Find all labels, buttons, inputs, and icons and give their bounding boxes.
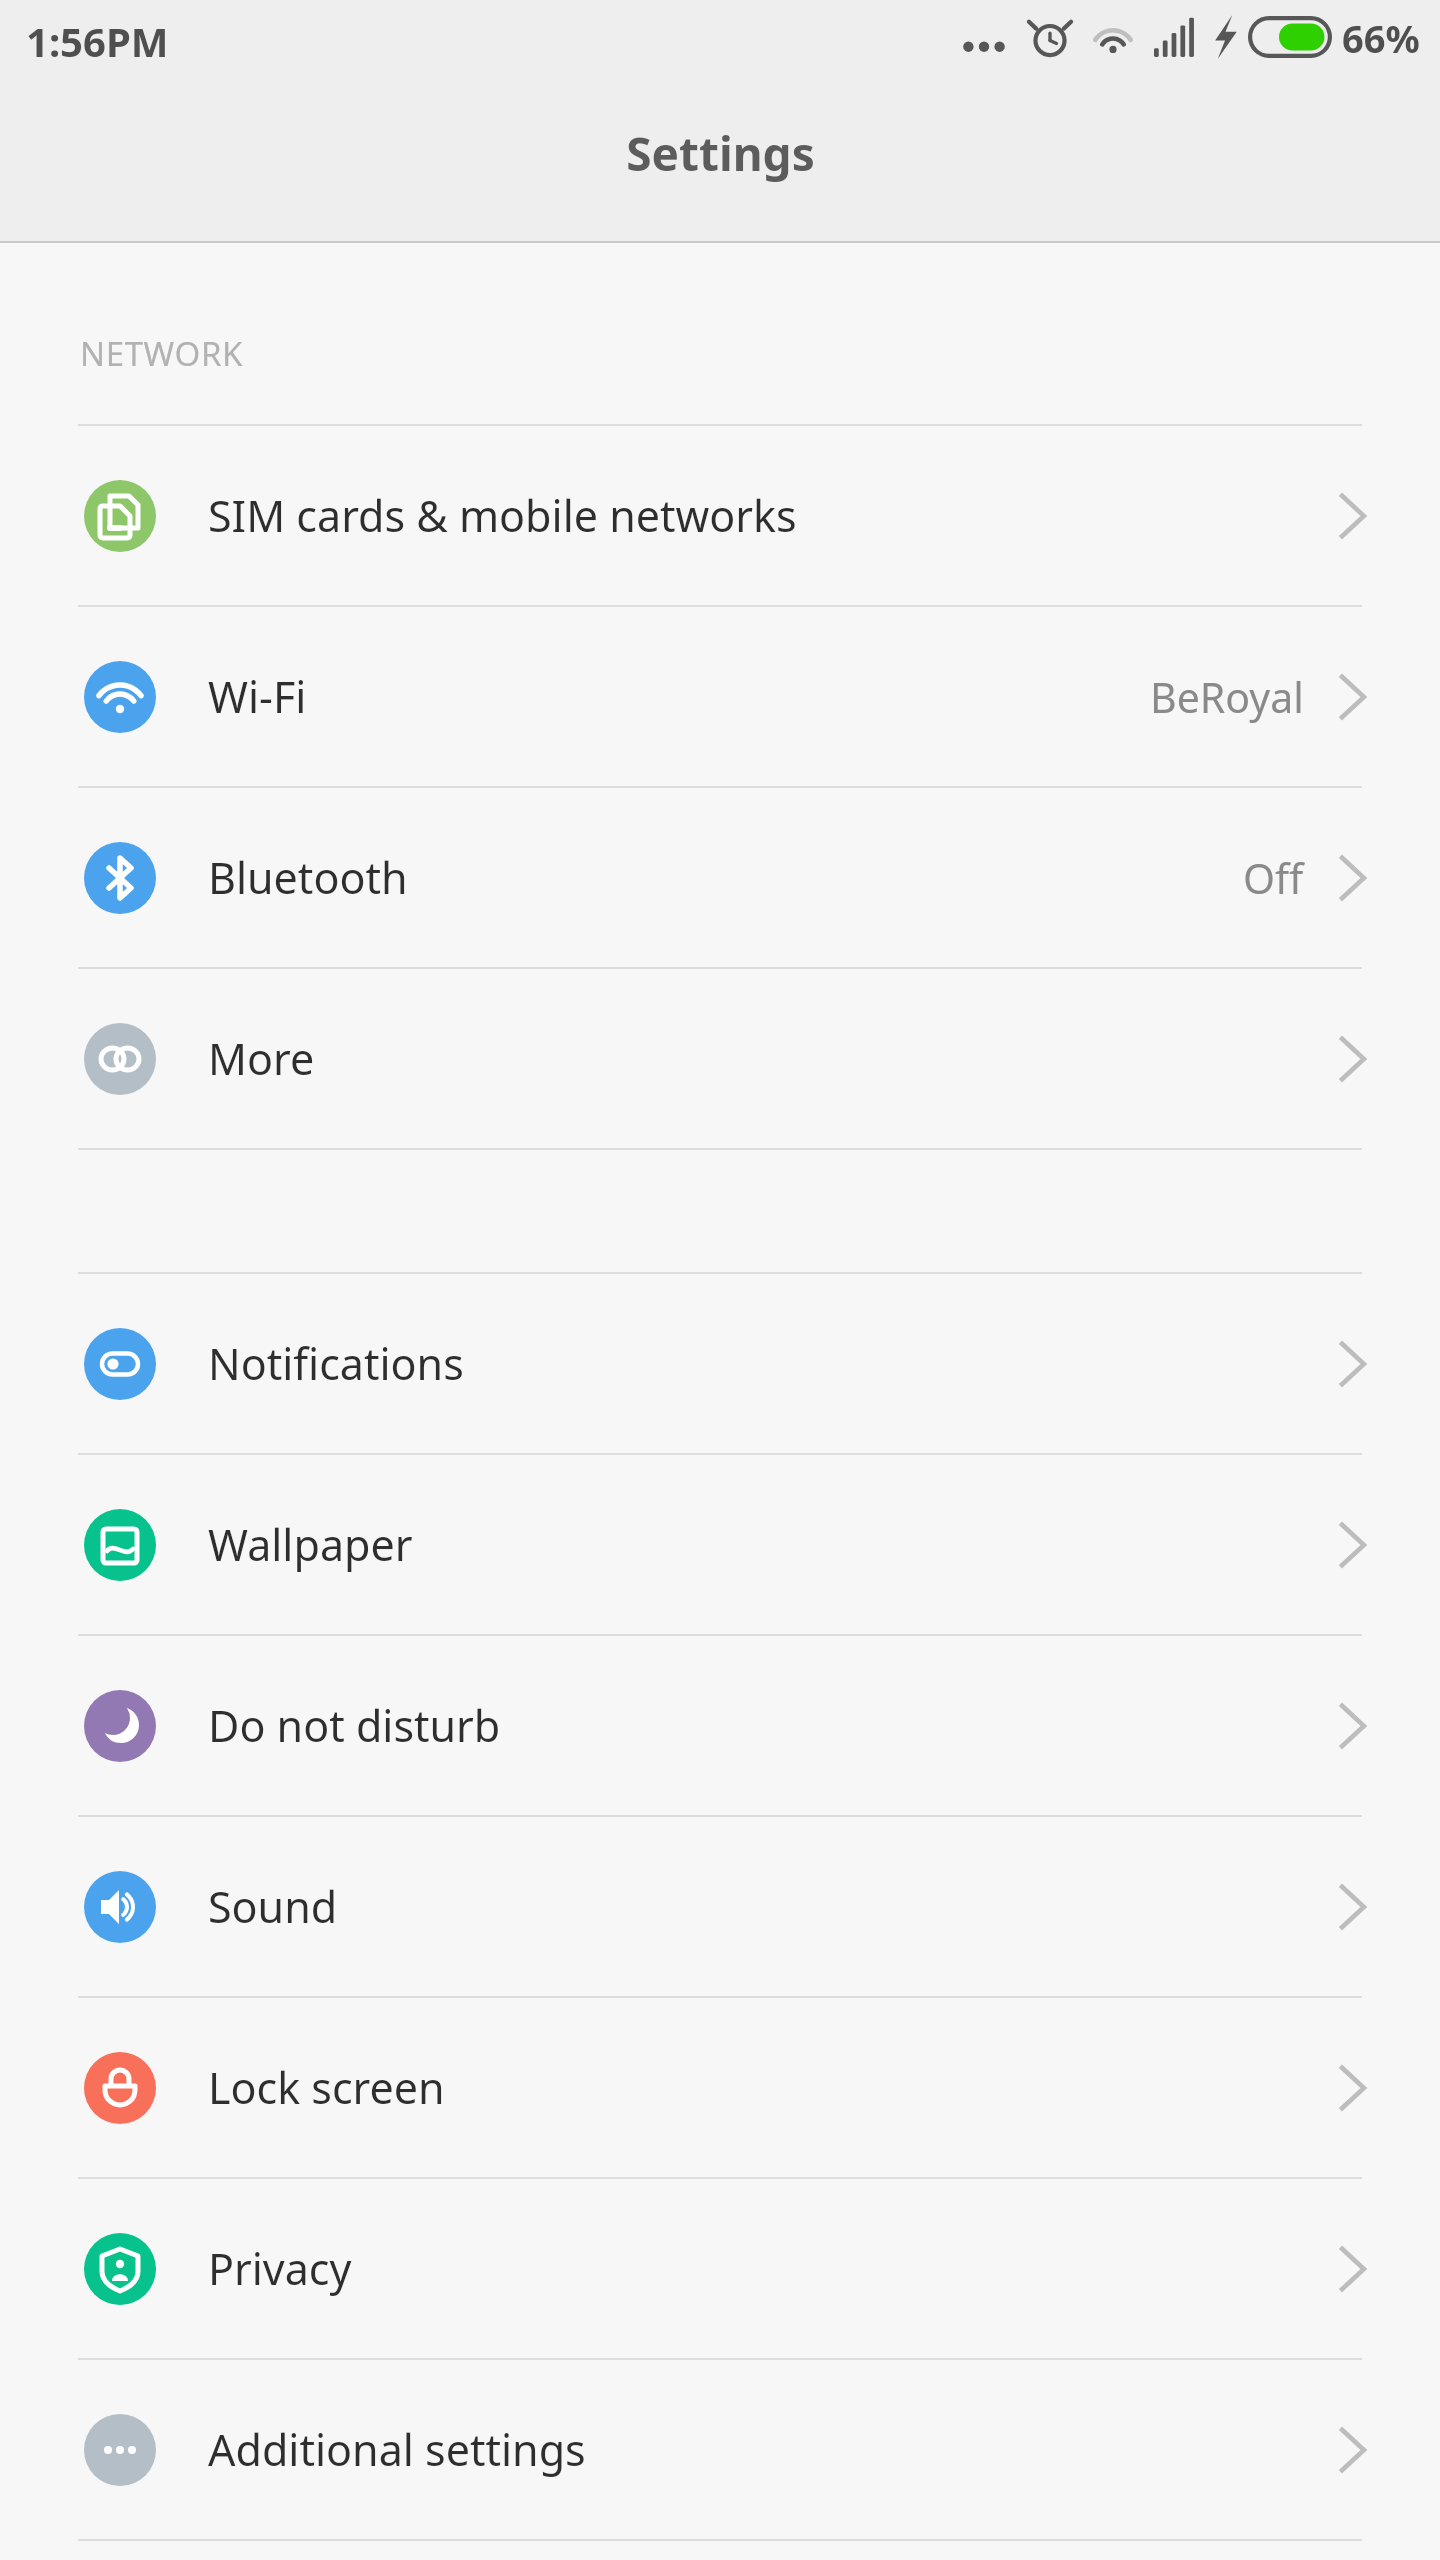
staticText: Notifications xyxy=(208,1334,464,1393)
staticText: Sound xyxy=(208,1877,338,1936)
staticText: Lock screen xyxy=(208,2058,445,2117)
staticText: More xyxy=(208,1029,315,1088)
button[interactable]: Bluetooth xyxy=(0,788,1440,967)
button[interactable]: Additional settings xyxy=(0,2360,1440,2539)
staticText: Privacy xyxy=(208,2239,352,2298)
button[interactable]: Notifications xyxy=(0,1274,1440,1453)
staticText: BeRoyal xyxy=(1150,669,1304,725)
staticText: Bluetooth xyxy=(208,848,408,907)
staticText: SIM cards & mobile networks xyxy=(208,486,797,545)
staticText: Do not disturb xyxy=(208,1696,501,1755)
staticText: 1:56PM xyxy=(26,14,169,68)
button[interactable]: Do not disturb xyxy=(0,1636,1440,1815)
button[interactable]: SIM cards & mobile networks xyxy=(0,426,1440,605)
staticText: Wallpaper xyxy=(208,1515,413,1574)
button[interactable]: Sound xyxy=(0,1817,1440,1996)
staticText: NETWORK xyxy=(80,331,244,376)
staticText: Settings xyxy=(626,122,815,185)
staticText: Wi-Fi xyxy=(208,667,307,726)
button[interactable]: Wallpaper xyxy=(0,1455,1440,1634)
staticText: Off xyxy=(1243,850,1304,906)
staticText: 66% xyxy=(1342,12,1420,62)
staticText: Additional settings xyxy=(208,2420,586,2479)
button[interactable]: Privacy xyxy=(0,2179,1440,2358)
button[interactable]: Lock screen xyxy=(0,1998,1440,2177)
button[interactable]: More xyxy=(0,969,1440,1148)
button[interactable]: Wi-Fi xyxy=(0,607,1440,786)
